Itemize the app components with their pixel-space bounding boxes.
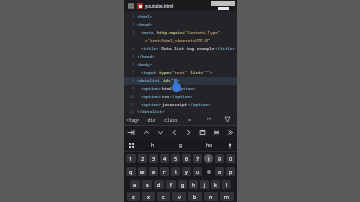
staticText: <body>: [137, 62, 153, 68]
button[interactable]: 2: [124, 21, 237, 29]
button[interactable]: 6: [182, 154, 191, 163]
staticText: u: [196, 168, 200, 175]
button[interactable]: k: [211, 180, 220, 189]
staticText: x: [147, 193, 150, 200]
button[interactable]: Previous: [139, 126, 153, 139]
button[interactable]: h: [138, 139, 167, 152]
button[interactable]: g: [178, 180, 187, 189]
button[interactable]: w: [138, 167, 147, 176]
staticText: h: [151, 142, 155, 149]
button[interactable]: Forward: [223, 126, 237, 139]
button[interactable]: 5: [171, 154, 180, 163]
staticText: </head>: [137, 54, 155, 60]
staticText: </option>: [173, 86, 196, 92]
button[interactable]: 9: [215, 154, 224, 163]
button[interactable]: <tag>: [124, 113, 142, 126]
staticText: 7: [196, 155, 200, 162]
button[interactable]: 3: [149, 154, 158, 163]
button[interactable]: 11: [124, 101, 237, 109]
staticText: t: [175, 168, 177, 175]
button[interactable]: h: [189, 180, 198, 189]
button[interactable]: u: [193, 167, 202, 176]
staticText: <meta: [141, 30, 157, 36]
button[interactable]: 7: [193, 154, 202, 163]
button[interactable]: 4: [160, 154, 169, 163]
button[interactable]: div: [142, 113, 161, 126]
staticText: </title>: [215, 46, 236, 52]
button[interactable]: r: [160, 167, 169, 176]
staticText: 10: [129, 94, 135, 100]
staticText: "text": [172, 70, 188, 76]
button[interactable]: Left: [167, 126, 181, 139]
button[interactable]: 9: [124, 85, 237, 93]
button[interactable]: Symbols: [124, 139, 138, 152]
button[interactable]: l: [222, 180, 231, 189]
staticText: a: [133, 181, 137, 188]
button[interactable]: 0: [226, 154, 235, 163]
button[interactable]: x: [142, 192, 155, 201]
staticText: k: [214, 181, 217, 188]
staticText: 0: [229, 155, 233, 162]
button[interactable]: Voice input: [223, 139, 237, 152]
button[interactable]: ho: [195, 139, 223, 152]
button[interactable]: 1: [124, 13, 237, 21]
button[interactable]: g: [167, 139, 195, 152]
button[interactable]: =: [180, 113, 199, 126]
button[interactable]: 10: [124, 93, 237, 101]
staticText: </option>: [170, 94, 193, 100]
staticText: g: [179, 142, 183, 149]
button[interactable]: Next: [153, 126, 167, 139]
button[interactable]: d: [154, 180, 164, 189]
button[interactable]: i: [204, 154, 213, 163]
button[interactable]: m: [220, 192, 234, 201]
button[interactable]: Save: [195, 126, 209, 139]
button[interactable]: 7: [124, 69, 237, 77]
staticText: z: [132, 193, 135, 200]
button[interactable]: j: [200, 180, 209, 189]
staticText: h: [192, 181, 196, 188]
button[interactable]: 5: [124, 53, 237, 61]
button[interactable]: 1: [126, 154, 136, 163]
staticText: i: [208, 155, 210, 163]
button[interactable]: o: [215, 167, 224, 176]
staticText: 5: [174, 155, 178, 162]
staticText: <datalist: [137, 78, 163, 84]
staticText: r: [163, 168, 166, 175]
button[interactable]: f: [166, 180, 176, 189]
staticText: e: [152, 168, 156, 175]
staticText: 2: [132, 22, 135, 28]
button[interactable]: s: [142, 180, 152, 189]
button[interactable]: p: [226, 167, 235, 176]
staticText: "Content-Type": [185, 30, 221, 36]
button[interactable]: 2: [138, 154, 147, 163]
button[interactable]: 12: [124, 109, 237, 113]
button[interactable]: n: [204, 192, 218, 201]
button[interactable]: y: [182, 167, 191, 176]
button[interactable]: ="text/html;charset=UTF-8": [124, 37, 237, 45]
button[interactable]: e: [149, 167, 158, 176]
button[interactable]: a: [130, 180, 140, 189]
button[interactable]: class: [161, 113, 180, 126]
button[interactable]: "": [199, 113, 218, 126]
staticText: 6: [185, 155, 189, 162]
button[interactable]: v: [172, 192, 186, 201]
button[interactable]: Select: [209, 126, 223, 139]
staticText: 9: [132, 86, 135, 92]
button[interactable]: b: [188, 192, 202, 201]
staticText: c: [162, 193, 165, 200]
staticText: >: [210, 70, 213, 76]
button[interactable]: q: [126, 167, 136, 176]
button[interactable]: c: [157, 192, 170, 201]
button[interactable]: t: [171, 167, 180, 176]
staticText: s: [146, 181, 149, 188]
button[interactable]: Menu: [127, 2, 135, 10]
button[interactable]: Right: [181, 126, 195, 139]
button[interactable]: Indent: [124, 126, 139, 139]
button[interactable]: More: [218, 113, 237, 126]
button[interactable]: 3: [124, 29, 237, 37]
button[interactable]: 4: [124, 45, 237, 53]
button[interactable]: 6: [124, 61, 237, 69]
button[interactable]: z: [127, 192, 140, 201]
staticText: 1: [129, 155, 133, 162]
button[interactable]: 8: [124, 77, 237, 85]
